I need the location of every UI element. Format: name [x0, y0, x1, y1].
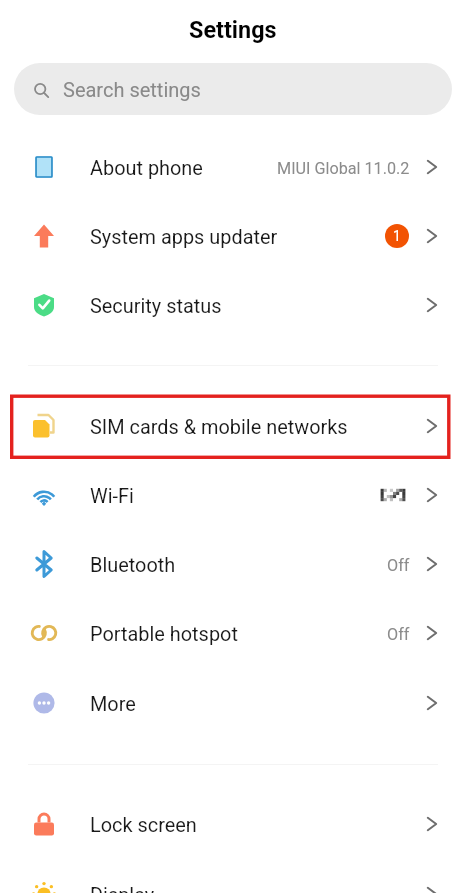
staticText: Search settings [63, 78, 201, 101]
button[interactable]: About phone [0, 132, 466, 201]
button[interactable]: Bluetooth [0, 529, 466, 598]
staticText: System apps updater [90, 226, 278, 249]
staticText: Settings [189, 16, 277, 43]
staticText: More [90, 693, 136, 716]
button[interactable]: More [0, 668, 466, 737]
staticText: Wi-Fi [90, 485, 134, 508]
staticText: SIM cards & mobile networks [90, 416, 348, 439]
button[interactable]: Display [0, 859, 466, 893]
staticText: Off [387, 556, 410, 575]
staticText: About phone [90, 157, 203, 180]
staticText: Off [387, 625, 410, 644]
button[interactable]: Security status [0, 270, 466, 339]
button[interactable]: Wi-Fi [0, 460, 466, 529]
staticText: 1 [393, 228, 401, 244]
staticText: Security status [90, 295, 222, 318]
staticText: Portable hotspot [90, 623, 238, 646]
button[interactable]: System apps updater [0, 201, 466, 270]
button[interactable]: SIM cards & mobile networks [0, 391, 466, 460]
button[interactable]: Portable hotspot [0, 598, 466, 667]
button[interactable]: Search settings [14, 63, 452, 115]
staticText: Bluetooth [90, 554, 176, 577]
staticText: Lock screen [90, 814, 197, 837]
staticText: Display [90, 884, 155, 893]
button[interactable]: Lock screen [0, 789, 466, 858]
staticText: MIUI Global 11.0.2 [277, 159, 410, 178]
